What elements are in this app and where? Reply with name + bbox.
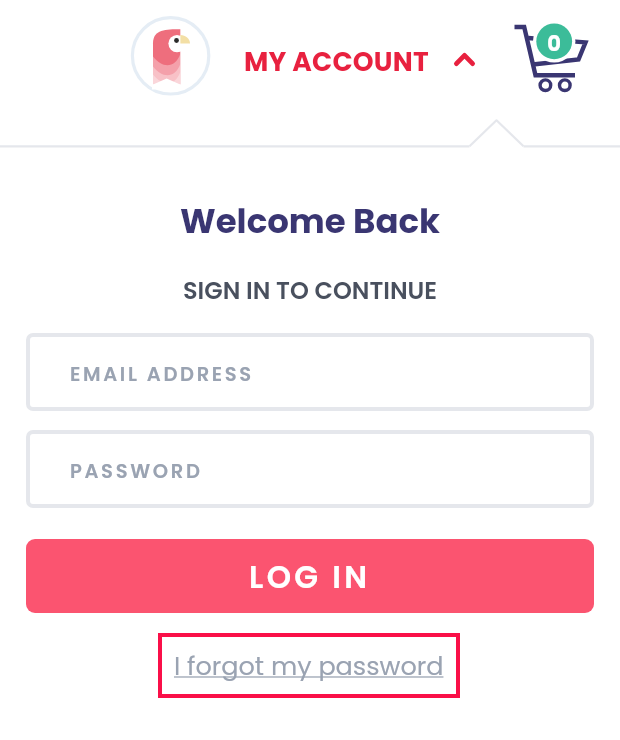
button[interactable]: EMAIL ADDRESS <box>26 333 594 411</box>
staticText: SIGN IN TO CONTINUE <box>0 274 620 308</box>
staticText: Welcome Back <box>0 197 620 245</box>
staticText: I forgot my password <box>174 648 444 684</box>
button[interactable]: Home <box>131 17 210 96</box>
button[interactable]: Shopping cart, 0 items <box>505 10 600 105</box>
staticText: MY ACCOUNT <box>244 43 429 79</box>
button[interactable]: MY ACCOUNT <box>244 43 475 79</box>
staticText: 0 <box>534 29 574 58</box>
button[interactable]: PASSWORD <box>26 430 594 508</box>
staticText: PASSWORD <box>70 458 203 485</box>
button[interactable]: LOG IN <box>26 539 594 613</box>
button[interactable]: I forgot my password <box>158 633 460 698</box>
staticText: EMAIL ADDRESS <box>70 361 254 388</box>
staticText: LOG IN <box>249 555 371 598</box>
